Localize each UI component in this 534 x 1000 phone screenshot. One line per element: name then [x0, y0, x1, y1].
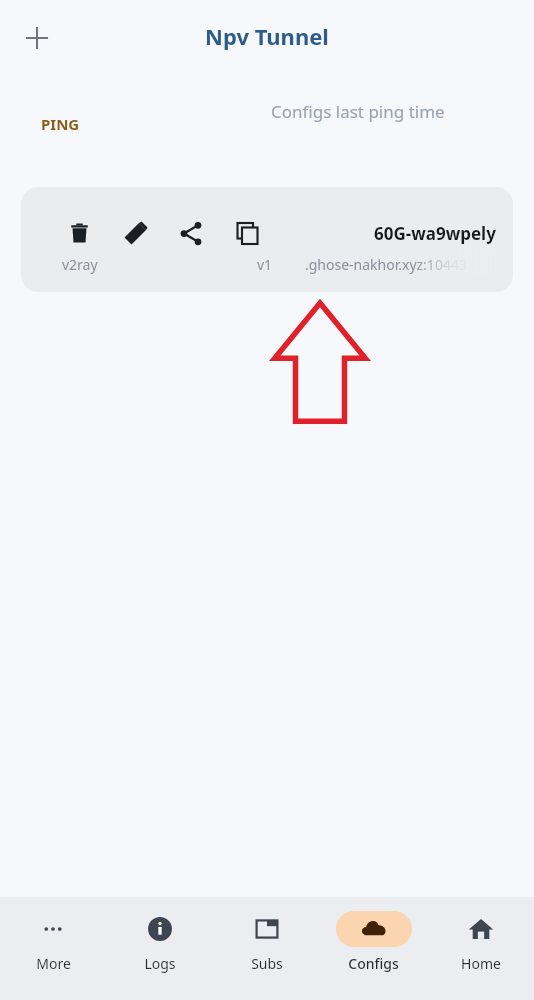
button[interactable]: Delete: [60, 214, 98, 252]
button[interactable]: Edit: [116, 214, 154, 252]
button[interactable]: Copy: [228, 214, 266, 252]
button[interactable]: Home: [427, 897, 534, 973]
staticText: Npv Tunnel: [0, 21, 534, 51]
staticText: v2ray: [62, 255, 98, 274]
staticText: v1: [257, 255, 273, 274]
button[interactable]: PING: [41, 114, 80, 134]
staticText: More: [36, 954, 71, 973]
staticText: Configs last ping time: [271, 100, 445, 123]
staticText: Logs: [144, 954, 176, 973]
button[interactable]: Configs: [320, 897, 427, 973]
staticText: Subs: [251, 954, 283, 973]
staticText: .ghose-nakhor.xyz:10443: [305, 255, 467, 274]
button[interactable]: More: [0, 897, 106, 973]
staticText: 60G-wa9wpely: [374, 222, 496, 245]
button[interactable]: Share: [172, 214, 210, 252]
button[interactable]: Logs: [106, 897, 213, 973]
button[interactable]: Add configuration: [13, 14, 61, 62]
button[interactable]: Subs: [213, 897, 320, 973]
staticText: Configs: [348, 954, 399, 973]
staticText: Home: [461, 954, 501, 973]
button[interactable]: Delete: [21, 187, 513, 292]
